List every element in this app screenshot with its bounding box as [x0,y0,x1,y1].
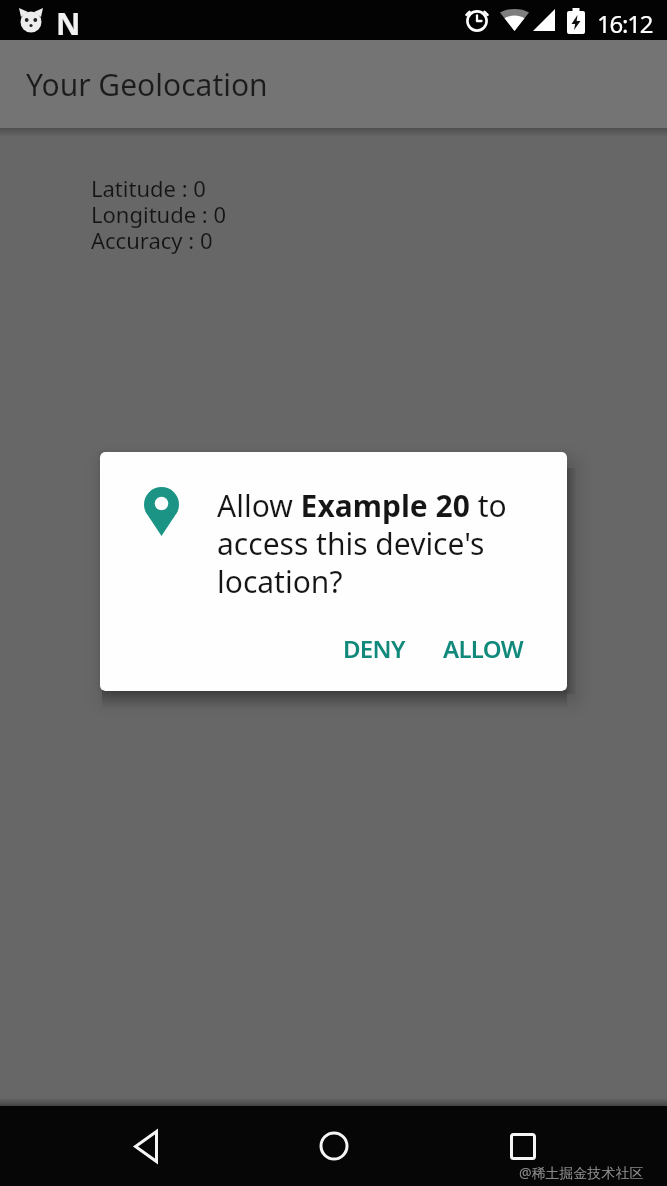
button[interactable] [299,1107,369,1185]
button[interactable] [488,1107,558,1185]
button[interactable] [111,1107,181,1185]
staticText: Longitude : 0 [91,199,227,229]
staticText: Accuracy : 0 [91,225,213,255]
staticText: ALLOW [443,632,523,665]
staticText: Allow Example 20 to access this device's… [217,485,507,602]
button[interactable]: ALLOW [428,626,538,670]
staticText: @稀土掘金技术社区 [519,1163,644,1182]
staticText: Your Geolocation [26,64,268,105]
button[interactable]: DENY [324,626,424,670]
staticText: DENY [343,632,405,665]
staticText: Latitude : 0 [91,173,206,203]
staticText: 16:12 [597,7,653,40]
staticText: N [56,3,81,43]
